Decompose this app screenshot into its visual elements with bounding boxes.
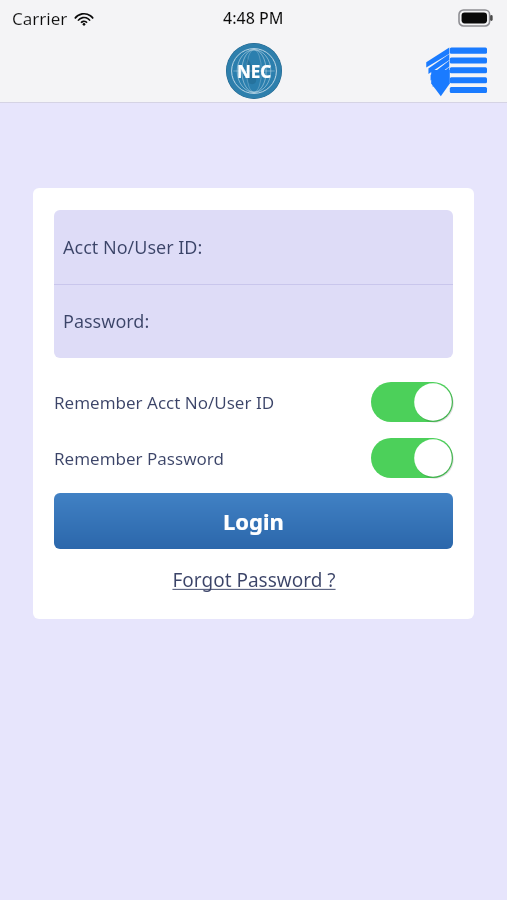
button[interactable]: Remember Acct No/User ID: [54, 382, 453, 422]
button[interactable]: Forgot Password ?: [166, 563, 342, 597]
button[interactable]: Toggle on: [371, 382, 453, 422]
staticText: Forgot Password ?: [172, 567, 336, 593]
button[interactable]: Menu: [425, 42, 487, 98]
other: NEC logo: [226, 43, 282, 99]
button[interactable]: Login: [54, 493, 453, 549]
staticText: Password:: [63, 309, 150, 334]
button[interactable]: Password:: [54, 285, 453, 358]
staticText: Acct No/User ID:: [63, 235, 203, 260]
button[interactable]: Toggle on: [371, 438, 453, 478]
staticText: NEC: [237, 60, 272, 83]
staticText: Remember Acct No/User ID: [54, 391, 371, 414]
staticText: Login: [223, 506, 284, 536]
staticText: Carrier: [12, 7, 68, 30]
staticText: 4:48 PM: [223, 7, 284, 29]
button[interactable]: Acct No/User ID:: [54, 210, 453, 284]
staticText: Remember Password: [54, 447, 371, 470]
button[interactable]: Remember Password: [54, 438, 453, 478]
